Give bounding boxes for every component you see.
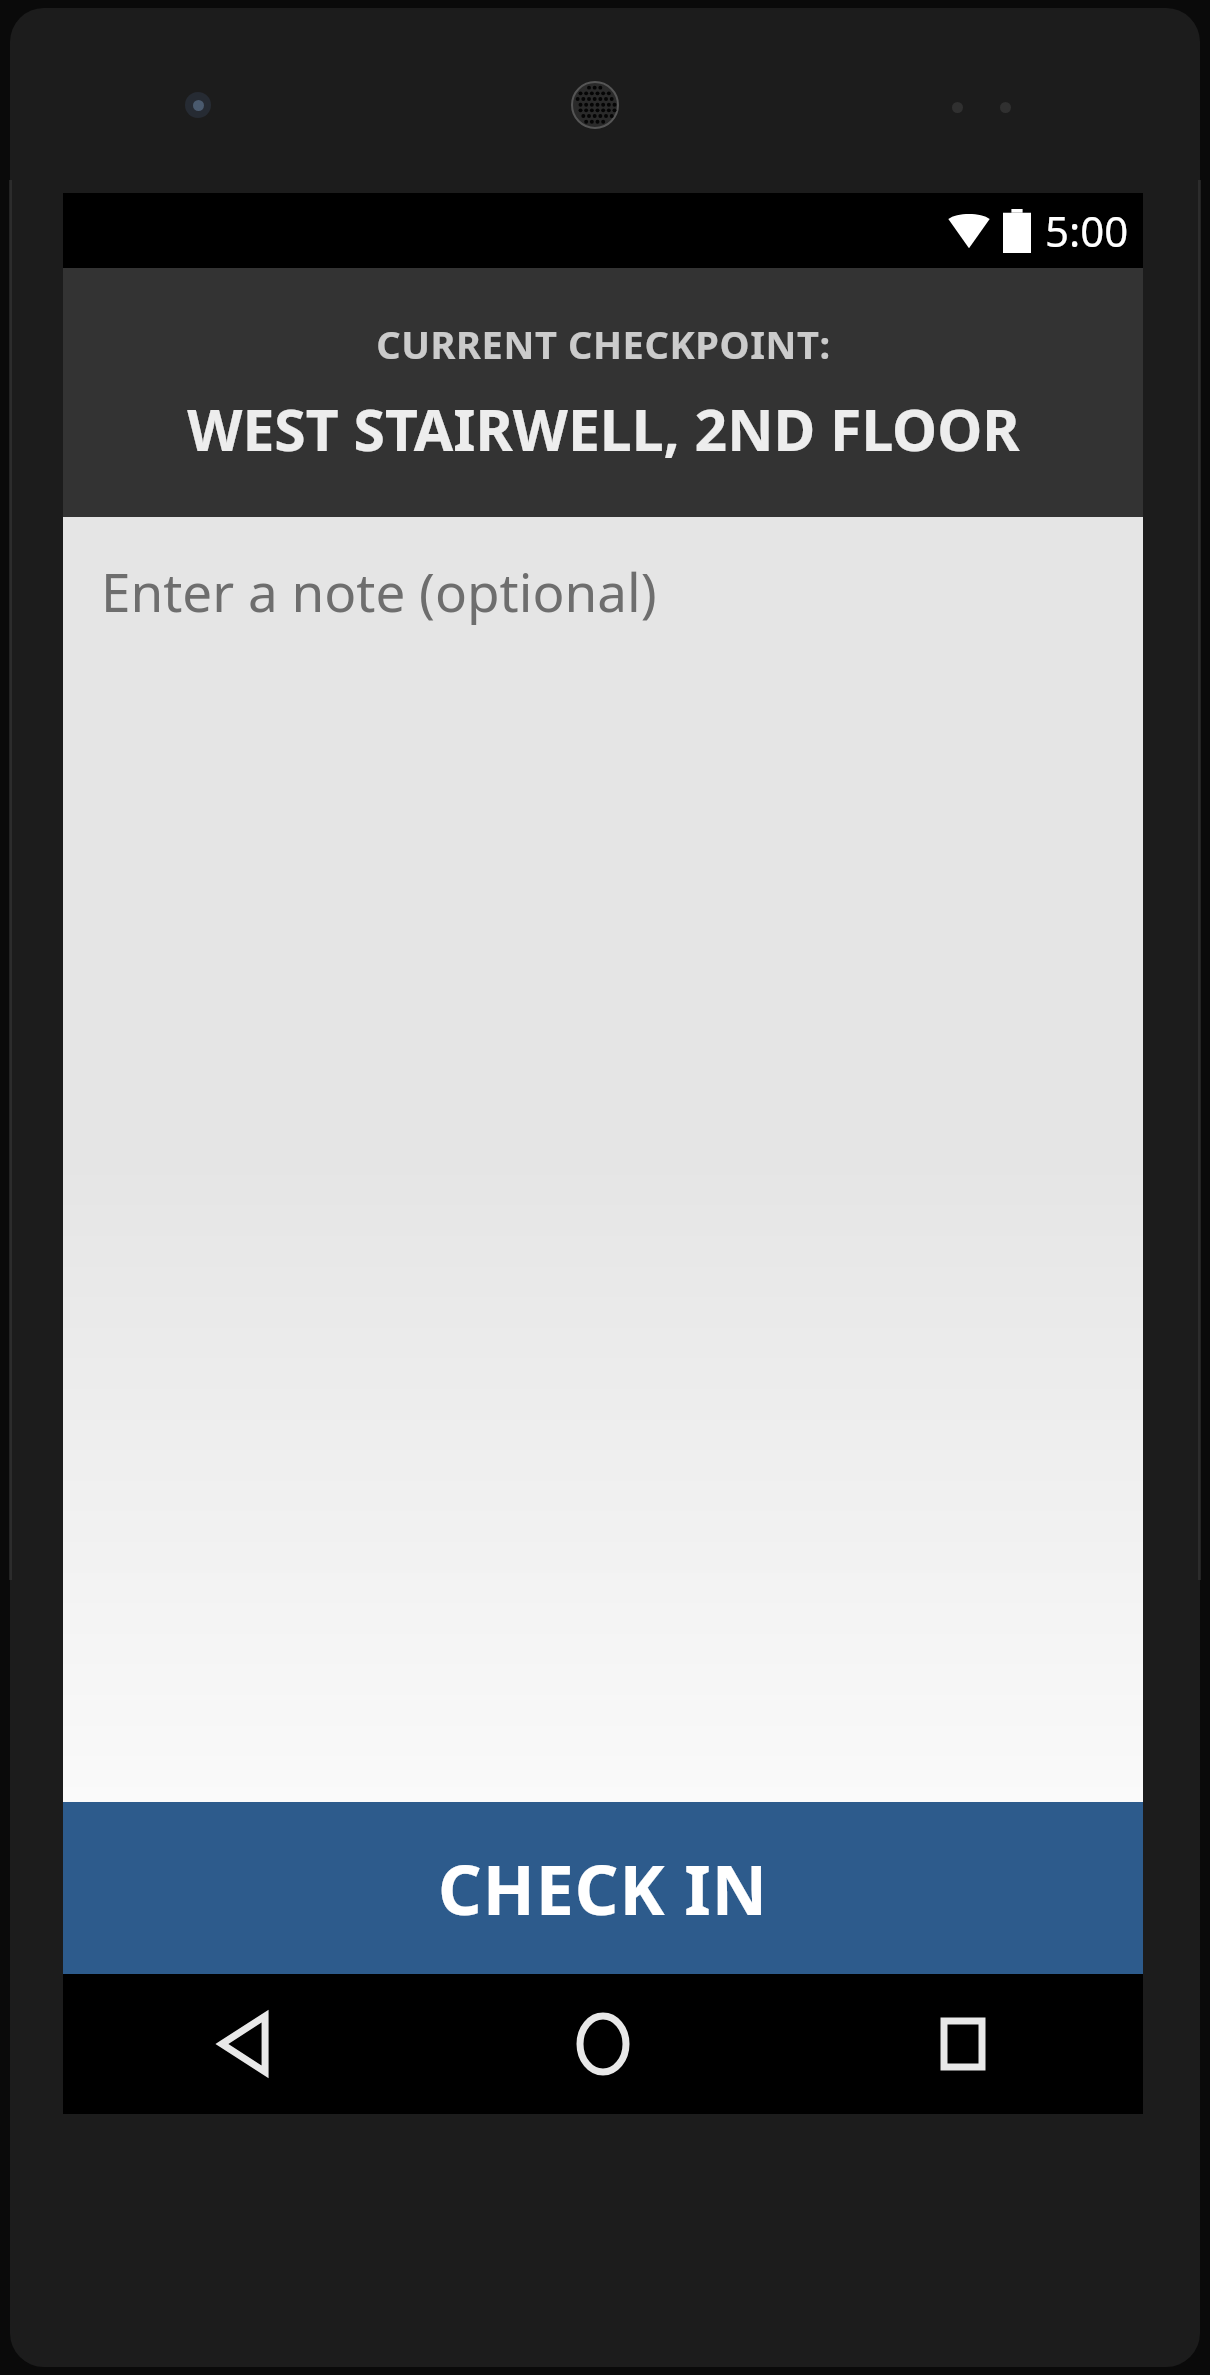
staticText: CHECK IN [438, 1842, 768, 1935]
staticText: Enter a note (optional) [101, 555, 657, 627]
staticText: WEST STAIRWELL, 2ND FLOOR [187, 390, 1020, 468]
staticText: 5:00 [1045, 202, 1129, 259]
button[interactable]: CHECK IN [63, 1802, 1143, 1974]
button[interactable]: Enter a note (optional) [63, 517, 1143, 1802]
button[interactable]: Recent apps [783, 1974, 1143, 2114]
button[interactable]: Back [63, 1974, 423, 2114]
button[interactable]: Home [423, 1974, 783, 2114]
staticText: CURRENT CHECKPOINT: [376, 318, 831, 370]
